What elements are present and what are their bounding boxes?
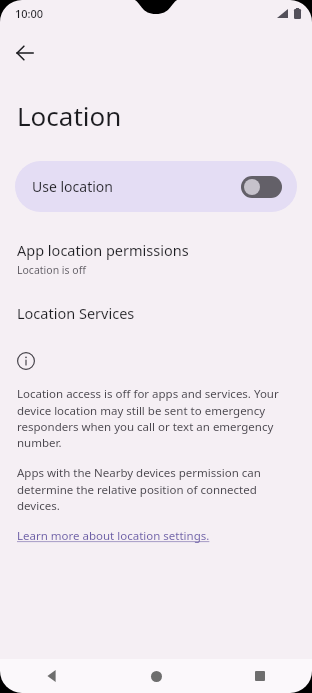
- staticText: 10:00: [15, 6, 44, 21]
- button[interactable]: Recent apps: [208, 659, 312, 693]
- staticText: Location Services: [17, 303, 135, 323]
- staticText: Apps with the Nearby devices permission …: [17, 465, 295, 513]
- button[interactable]: App location permissions: [0, 240, 312, 277]
- button[interactable]: Learn more about location settings.: [17, 528, 210, 544]
- staticText: Learn more about location settings.: [17, 528, 210, 544]
- button[interactable]: Home: [104, 659, 208, 693]
- staticText: Location access is off for apps and serv…: [17, 386, 295, 450]
- button[interactable]: Use location: [15, 161, 297, 212]
- staticText: Use location: [32, 177, 241, 196]
- staticText: App location permissions: [17, 240, 189, 260]
- staticText: Location: [17, 98, 122, 133]
- button[interactable]: Navigate up: [7, 35, 43, 71]
- staticText: Location is off: [17, 263, 86, 277]
- button[interactable]: Location Services: [0, 303, 312, 323]
- button[interactable]: Back: [0, 659, 104, 693]
